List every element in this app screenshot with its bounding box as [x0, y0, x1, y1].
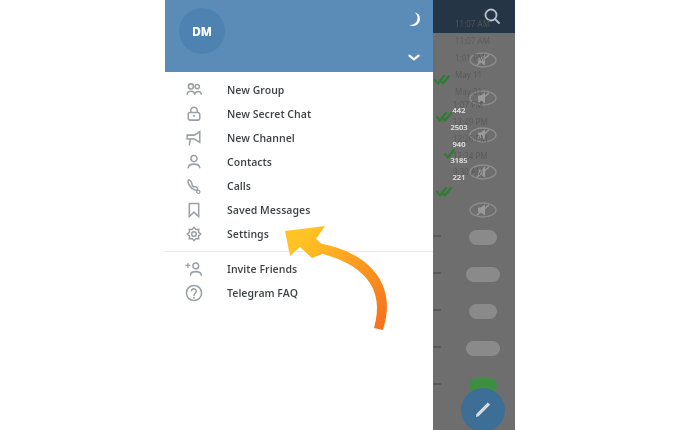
staticText: 1:07 PM	[453, 99, 484, 110]
button[interactable]: DM	[179, 8, 225, 54]
button[interactable]: New Group	[165, 78, 433, 102]
button[interactable]: Expand accounts	[403, 46, 425, 68]
staticText: 9:30 AM	[453, 166, 484, 177]
staticText: 2503	[433, 122, 485, 132]
staticText: Settings	[227, 227, 269, 241]
staticText: DM	[192, 23, 213, 39]
button[interactable]: Calls	[165, 174, 433, 198]
staticText: 221	[433, 172, 485, 182]
staticText: 442	[433, 105, 485, 115]
staticText: 1:01 PM	[455, 52, 486, 63]
staticText: 12:24 PM	[453, 150, 488, 161]
staticText: 12:49 PM	[453, 116, 488, 127]
staticText: New Group	[227, 83, 285, 97]
staticText: May 01	[455, 86, 483, 97]
staticText: New Secret Chat	[227, 107, 312, 121]
button[interactable]: Telegram FAQ	[165, 281, 433, 305]
staticText: New Channel	[227, 131, 295, 145]
staticText: 940	[433, 139, 485, 149]
staticText: Calls	[227, 179, 251, 193]
staticText: Saved Messages	[227, 203, 311, 217]
staticText: 11:07 AM	[455, 18, 490, 29]
staticText: Contacts	[227, 155, 272, 169]
staticText: Invite Friends	[227, 262, 298, 276]
button[interactable]: Contacts	[165, 150, 433, 174]
button[interactable]: Invite Friends	[165, 257, 433, 281]
button[interactable]: New Channel	[165, 126, 433, 150]
button[interactable]: New Secret Chat	[165, 102, 433, 126]
button[interactable]: Night mode	[401, 7, 425, 31]
button[interactable]: Saved Messages	[165, 198, 433, 222]
staticText: 11:07 AM	[455, 35, 490, 46]
staticText: 3185	[433, 155, 485, 165]
staticText: 12:26 PM	[453, 133, 488, 144]
staticText: May 11	[455, 69, 483, 80]
button[interactable]: New message	[461, 388, 505, 430]
staticText: Telegram FAQ	[227, 286, 298, 300]
button[interactable]: Settings	[165, 222, 433, 246]
